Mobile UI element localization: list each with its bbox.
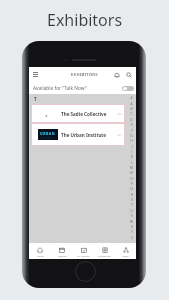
staticText: B — [130, 107, 133, 111]
button[interactable]: The Sadie Collective — [31, 104, 125, 123]
staticText: H — [130, 139, 133, 143]
button[interactable]: EXHIBITORS — [94, 246, 115, 259]
staticText: Exhibitors — [47, 9, 123, 31]
staticText: G — [130, 134, 133, 138]
button[interactable]: MY AGENDA — [73, 246, 94, 259]
staticText: Available for "Talk Now" — [33, 85, 87, 92]
staticText: D — [130, 118, 133, 122]
staticText: U — [130, 209, 133, 213]
staticText: P — [131, 182, 133, 186]
staticText: W — [130, 220, 133, 224]
button[interactable]: More options — [115, 131, 123, 139]
staticText: EXHIBITORS — [98, 255, 111, 258]
staticText: S — [131, 198, 133, 202]
button[interactable]: MORE — [115, 246, 136, 259]
staticText: Q — [130, 187, 133, 191]
staticText: I — [131, 145, 133, 149]
staticText: T — [131, 203, 133, 207]
button[interactable]: AGENDA — [51, 246, 73, 259]
button[interactable]: Talk Now toggle — [122, 86, 134, 91]
staticText: N — [130, 171, 133, 175]
staticText: R — [131, 193, 133, 197]
staticText: L — [131, 161, 133, 165]
staticText: INSTITUTE — [42, 136, 54, 139]
staticText: # — [130, 96, 133, 100]
staticText: O — [130, 177, 133, 181]
staticText: AGENDA — [58, 255, 67, 258]
staticText: X — [131, 225, 133, 229]
staticText: Z — [131, 236, 133, 240]
staticText: The Sadie Collective — [61, 111, 107, 117]
staticText: T — [34, 96, 37, 102]
staticText: A — [130, 102, 133, 106]
staticText: MY AGENDA — [77, 255, 90, 258]
staticText: HOME — [37, 255, 44, 258]
staticText: M — [130, 166, 133, 170]
staticText: URBAN — [40, 131, 56, 136]
staticText: K — [131, 155, 133, 159]
button[interactable]: Menu — [30, 69, 41, 80]
staticText: J — [131, 150, 132, 154]
button[interactable]: Search — [123, 69, 135, 81]
staticText: F — [131, 129, 133, 133]
button[interactable]: HOME — [29, 246, 51, 259]
staticText: MORE — [122, 255, 129, 258]
button[interactable]: Notifications — [111, 69, 123, 81]
staticText: E — [131, 123, 133, 127]
button[interactable]: URBAN — [31, 123, 125, 146]
button[interactable]: More options — [115, 110, 123, 118]
staticText: C — [130, 112, 133, 116]
staticText: EXHIBITORS — [71, 72, 98, 78]
staticText: V — [131, 214, 133, 218]
staticText: Y — [131, 230, 133, 234]
staticText: The Urban Institute — [61, 132, 107, 138]
